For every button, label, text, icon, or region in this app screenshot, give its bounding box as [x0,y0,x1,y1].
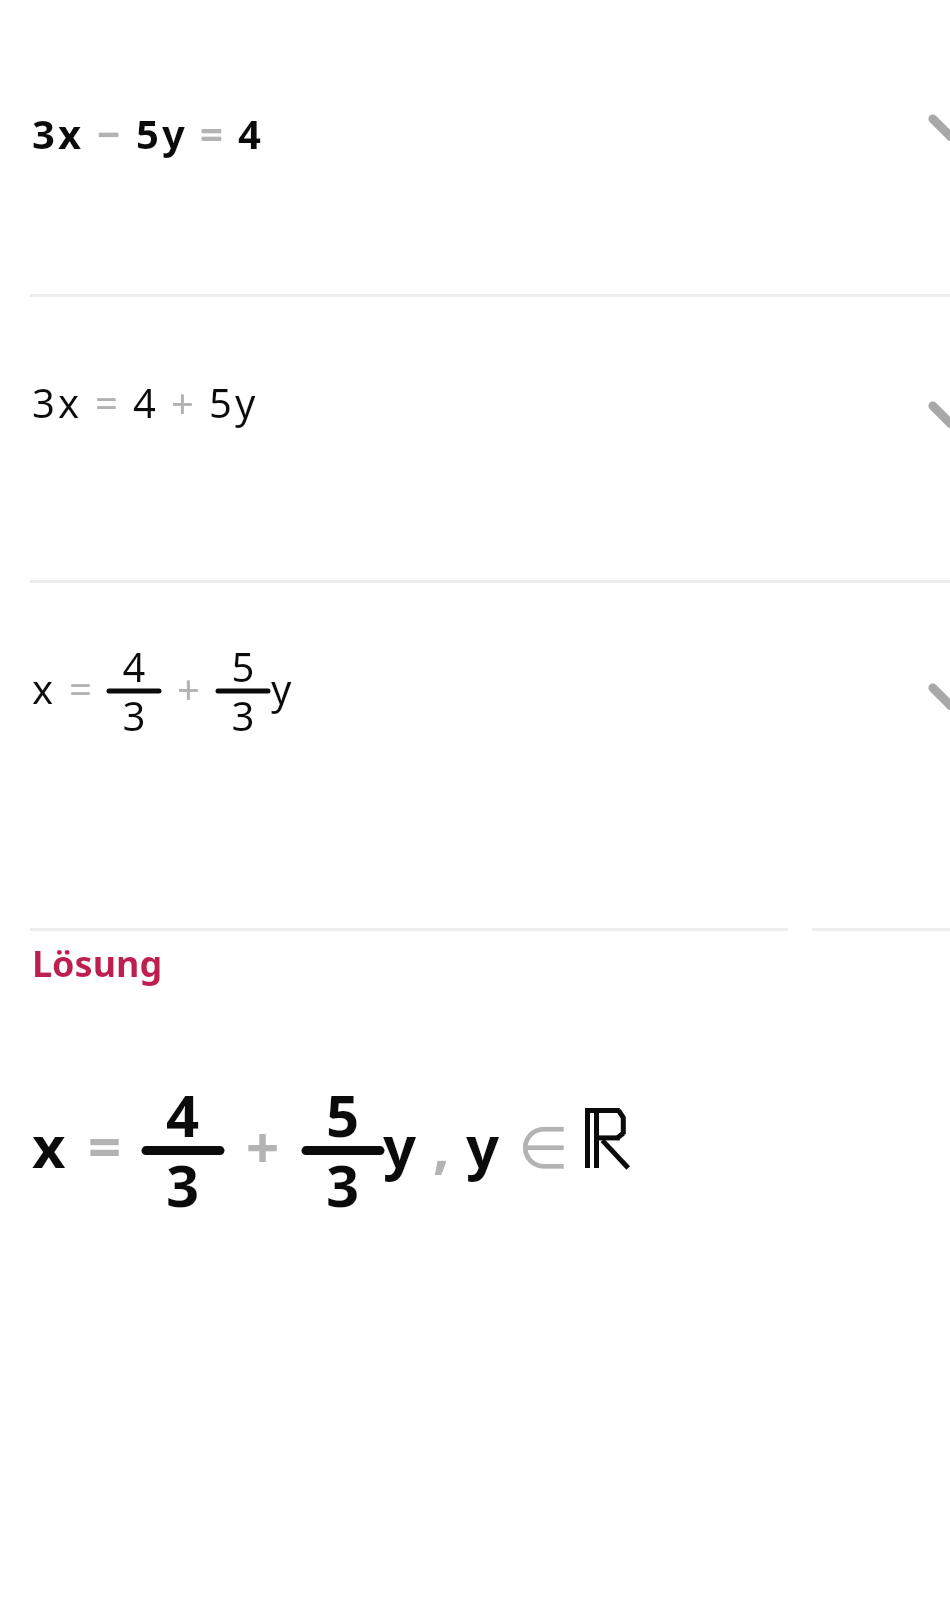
button[interactable]: Rechenschritt anzeigen [0,297,950,583]
button[interactable]: Rechenschritt anzeigen [0,583,950,931]
button[interactable]: Lösung: x gleich vier Drittel plus fünf … [0,1023,950,1313]
button[interactable]: Rechenschritt anzeigen [0,0,950,297]
